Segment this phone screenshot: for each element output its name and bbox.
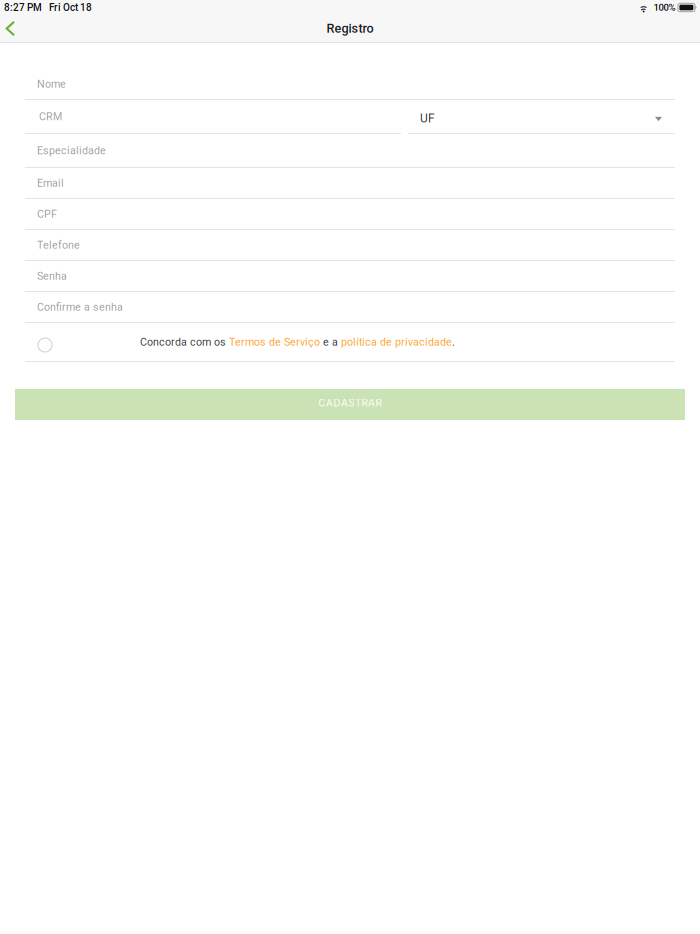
staticText: CRM — [39, 110, 62, 123]
staticText: Fri Oct 18 — [49, 2, 92, 13]
staticText: e a — [320, 336, 341, 348]
staticText: 8:27 PM — [4, 2, 42, 13]
button[interactable]: Agree to terms — [25, 323, 62, 361]
button[interactable]: Senha — [25, 261, 675, 292]
button[interactable]: política de privacidade — [341, 336, 452, 348]
staticText: Termos de Serviço — [229, 336, 320, 348]
staticText: Concorda com os — [140, 336, 229, 348]
staticText: Telefone — [37, 239, 80, 251]
staticText: Registro — [326, 21, 373, 36]
staticText: CPF — [37, 208, 57, 220]
button[interactable]: Termos de Serviço — [229, 336, 320, 348]
button[interactable]: Email — [25, 168, 675, 199]
button[interactable]: Nome — [25, 69, 675, 100]
staticText: Senha — [37, 270, 67, 282]
staticText: Nome — [37, 78, 66, 90]
button[interactable]: Confirme a senha — [25, 292, 675, 323]
button[interactable]: CRM — [25, 100, 401, 134]
staticText: 100% — [653, 2, 675, 13]
staticText: UF — [420, 111, 435, 126]
button[interactable]: Telefone — [25, 230, 675, 261]
button[interactable]: Back — [0, 15, 28, 42]
button[interactable]: UF — [408, 100, 675, 134]
button[interactable]: CPF — [25, 199, 675, 230]
staticText: política de privacidade — [341, 336, 452, 348]
staticText: . — [452, 336, 455, 348]
button[interactable]: CADASTRAR — [15, 389, 685, 420]
staticText: CADASTRAR — [318, 397, 381, 409]
staticText: Email — [37, 177, 64, 189]
staticText: Especialidade — [37, 144, 106, 157]
button[interactable]: Especialidade — [25, 134, 675, 168]
staticText: Confirme a senha — [37, 301, 123, 313]
